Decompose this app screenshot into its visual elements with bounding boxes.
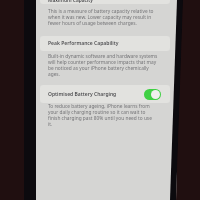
staticText: Peak Performance Capability [48, 40, 119, 47]
staticText: Built-in dynamic software and hardware s… [48, 53, 161, 77]
button[interactable]: Peak Performance Capability [40, 36, 170, 51]
button[interactable]: Optimised Battery Charging toggle [144, 89, 161, 100]
staticText: Maximum Capacity [48, 0, 93, 4]
staticText: To reduce battery ageing, iPhone learns … [48, 103, 161, 127]
button[interactable]: Optimised Battery Charging [40, 85, 170, 103]
button[interactable]: Maximum Capacity [40, 0, 170, 4]
staticText: Optimised Battery Charging [48, 91, 117, 98]
staticText: This is a measure of battery capacity re… [48, 8, 161, 26]
